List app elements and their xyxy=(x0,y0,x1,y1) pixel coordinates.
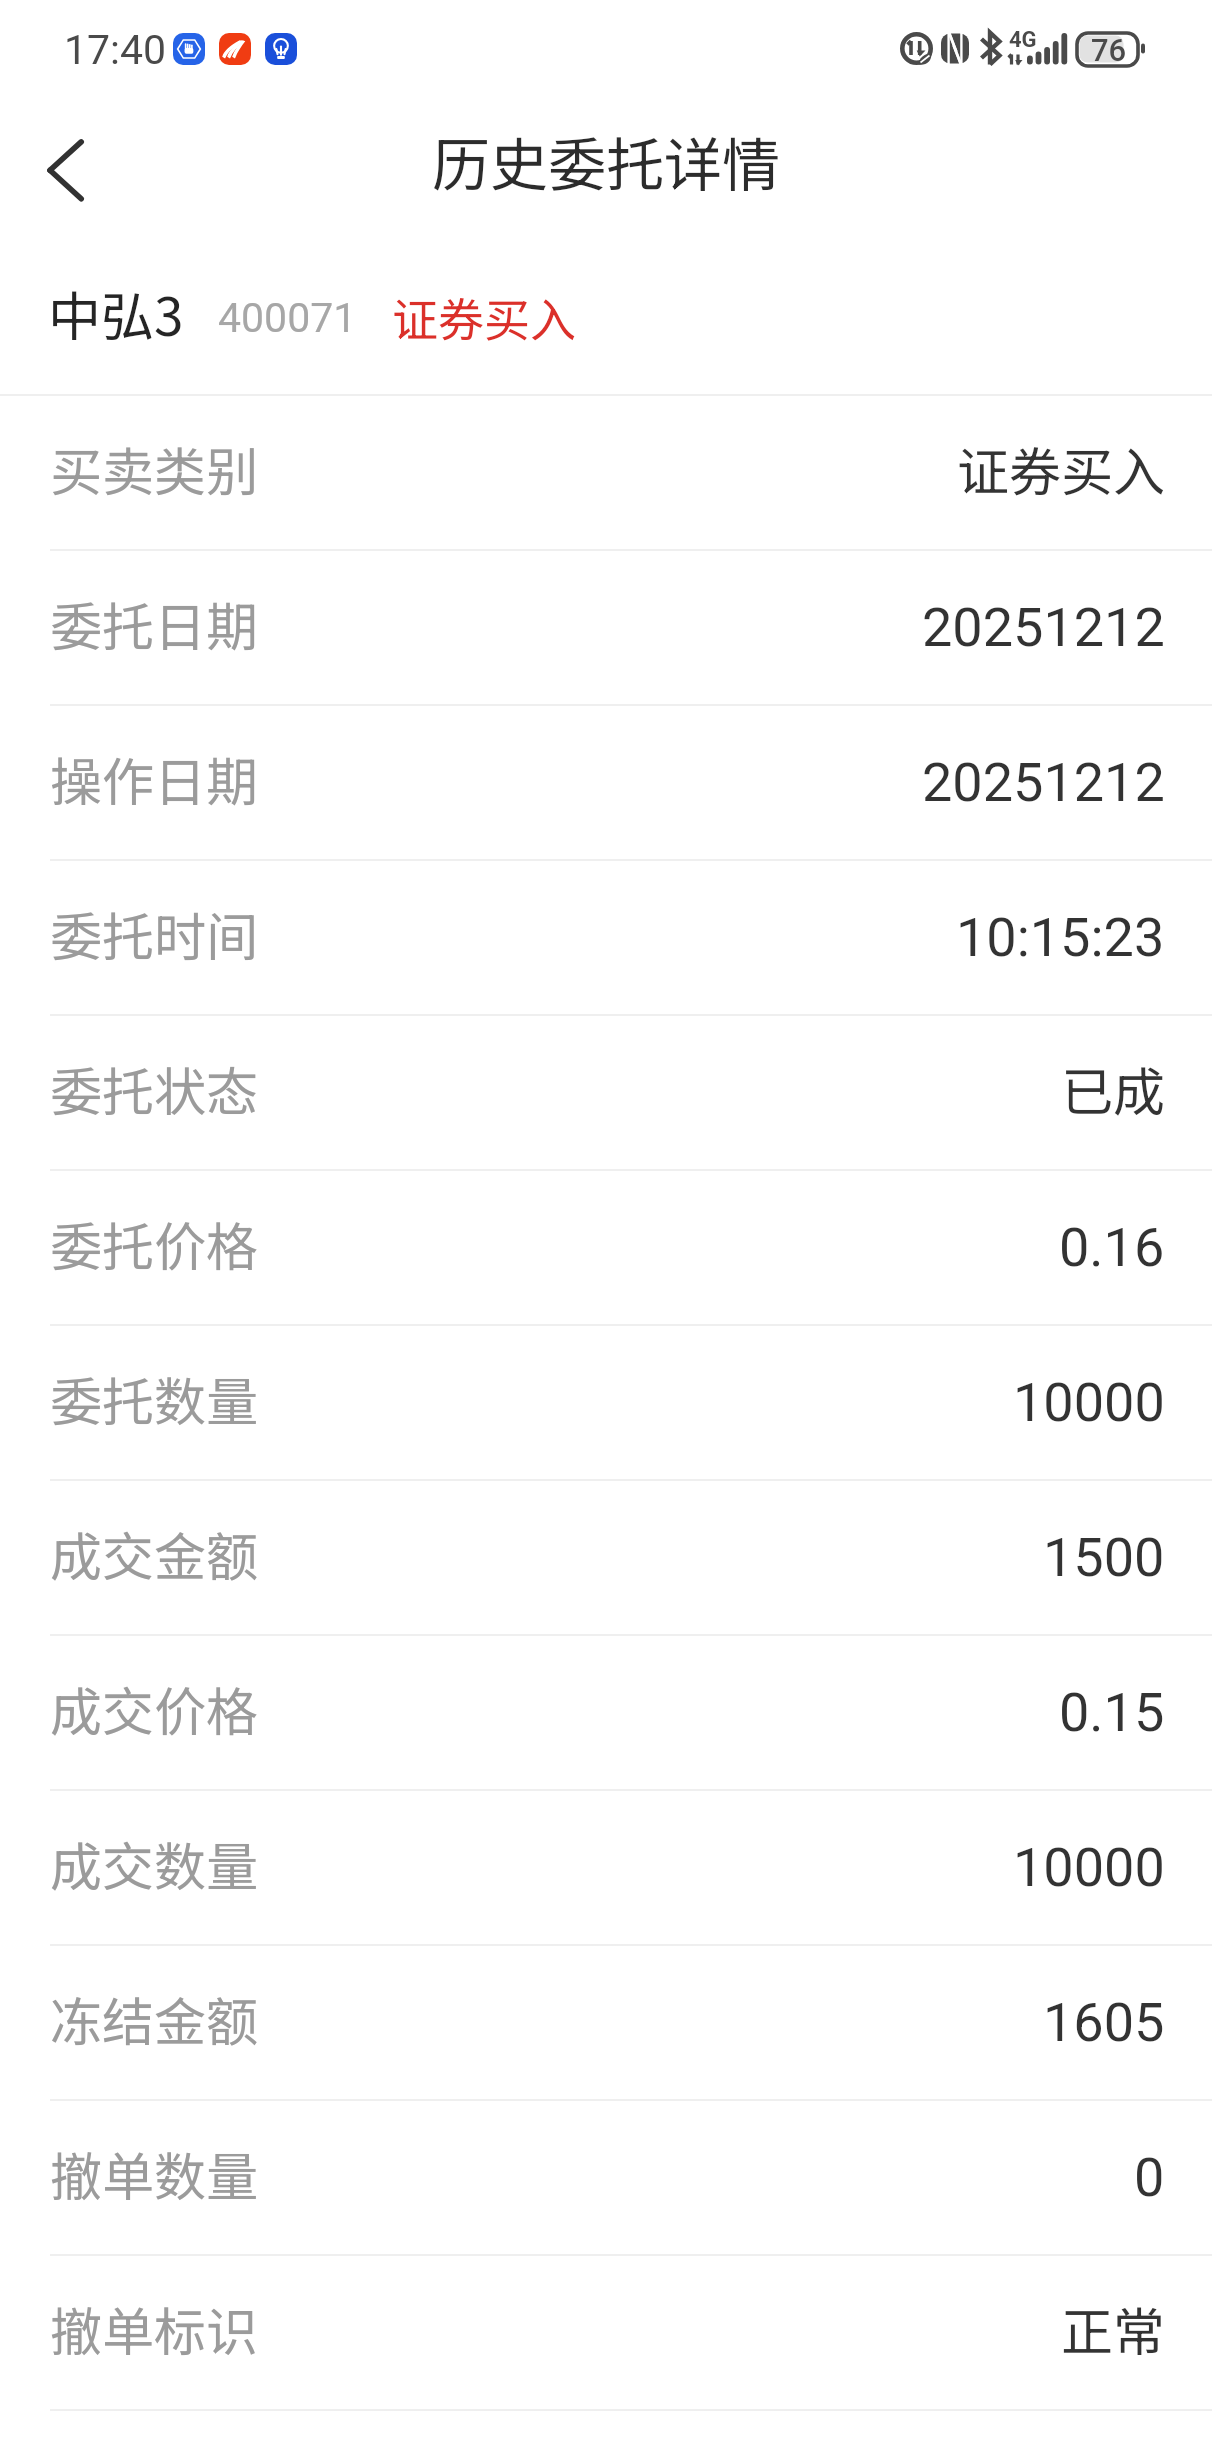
staticText: 正常 xyxy=(1061,2291,1166,2366)
staticText: 操作日期 xyxy=(50,741,259,816)
staticText: 委托日期 xyxy=(50,586,259,661)
staticText: 76 xyxy=(1091,32,1127,68)
staticText: 委托状态 xyxy=(50,1051,259,1126)
button[interactable]: 成交数量 xyxy=(0,1791,1212,1946)
button[interactable]: 成交价格 xyxy=(0,1636,1212,1791)
button[interactable]: Back xyxy=(15,115,115,215)
staticText: 买卖类别 xyxy=(50,431,259,506)
staticText: 1500 xyxy=(1043,1526,1165,1589)
staticText: 20251212 xyxy=(922,751,1165,814)
button[interactable]: 撤单标识 xyxy=(0,2256,1212,2411)
staticText: 0 xyxy=(1134,2146,1165,2209)
staticText: 证券买入 xyxy=(392,284,576,351)
staticText: 成交金额 xyxy=(50,1516,259,1591)
button[interactable]: 买卖类别 xyxy=(0,396,1212,551)
staticText: 20251212 xyxy=(922,596,1165,659)
button[interactable]: 冻结金额 xyxy=(0,1946,1212,2101)
button[interactable]: 撤单数量 xyxy=(0,2101,1212,2256)
button[interactable]: 操作日期 xyxy=(0,706,1212,861)
staticText: 成交价格 xyxy=(50,1671,259,1746)
button[interactable]: 委托价格 xyxy=(0,1171,1212,1326)
staticText: 冻结金额 xyxy=(50,1981,259,2056)
button[interactable]: 成交金额 xyxy=(0,1481,1212,1636)
staticText: 中弘3 xyxy=(48,275,184,352)
staticText: 成交数量 xyxy=(50,1826,259,1901)
staticText: 10000 xyxy=(1013,1836,1165,1899)
staticText: 4G xyxy=(1009,27,1037,53)
staticText: 已成 xyxy=(1061,1051,1166,1126)
staticText: 历史委托详情 xyxy=(432,119,781,203)
staticText: 撤单标识 xyxy=(50,2291,259,2366)
staticText: 委托时间 xyxy=(50,896,259,971)
button[interactable]: 委托日期 xyxy=(0,551,1212,706)
button[interactable]: 委托时间 xyxy=(0,861,1212,1016)
button[interactable]: 委托状态 xyxy=(0,1016,1212,1171)
button[interactable]: 委托数量 xyxy=(0,1326,1212,1481)
staticText: 10:15:23 xyxy=(956,906,1165,969)
staticText: 撤单数量 xyxy=(50,2136,259,2211)
staticText: 17:40 xyxy=(64,26,167,74)
staticText: 委托数量 xyxy=(50,1361,259,1436)
staticText: 10000 xyxy=(1013,1371,1165,1434)
staticText: 委托价格 xyxy=(50,1206,259,1281)
staticText: 0.15 xyxy=(1059,1681,1165,1744)
staticText: 0.16 xyxy=(1059,1216,1165,1279)
staticText: 1605 xyxy=(1043,1991,1165,2054)
staticText: 证券买入 xyxy=(957,431,1166,506)
staticText: 400071 xyxy=(218,294,357,342)
